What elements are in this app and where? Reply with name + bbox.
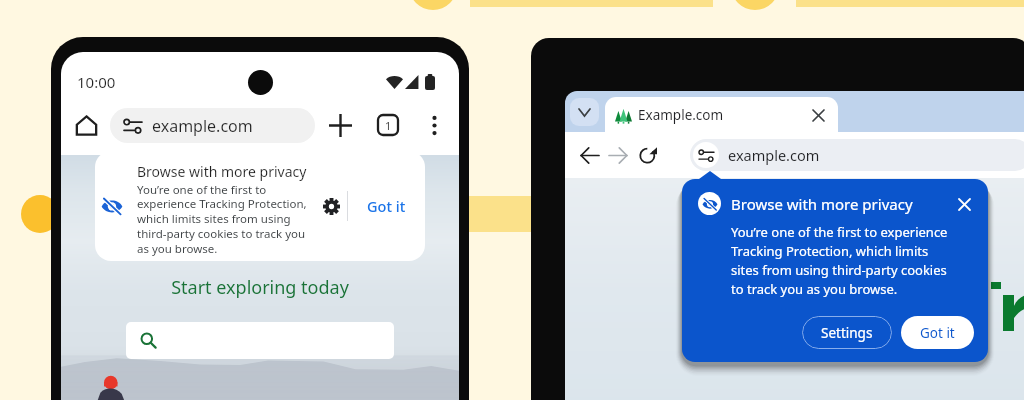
staticText: 10:00 <box>77 72 116 92</box>
staticText: example.com <box>152 115 253 137</box>
staticText: Example.com <box>638 106 724 124</box>
button[interactable]: Close tab <box>808 105 828 125</box>
staticText: Browse with more privacy <box>731 194 913 214</box>
staticText: example.com <box>728 145 820 165</box>
button[interactable]: Got it <box>357 188 416 224</box>
button[interactable]: Back <box>576 142 602 168</box>
staticText: Got it <box>920 324 955 342</box>
staticText: You’re one of the first to experience Tr… <box>137 182 320 257</box>
button[interactable]: Search <box>126 322 394 359</box>
staticText: Browse with more privacy <box>137 162 307 181</box>
button[interactable]: More options <box>420 111 448 139</box>
button[interactable]: Search tabs <box>570 98 599 126</box>
button[interactable]: New tab <box>323 108 357 142</box>
staticText: Start exploring today <box>61 275 459 300</box>
staticText: You’re one of the first to experience Tr… <box>731 223 955 298</box>
button[interactable]: Close <box>954 194 974 214</box>
staticText: Got it <box>367 196 406 216</box>
button[interactable]: Settings <box>317 192 345 220</box>
button[interactable]: Forward <box>605 142 631 168</box>
staticText: 1 <box>385 118 392 133</box>
button[interactable]: example.com <box>110 108 315 143</box>
button[interactable]: Settings <box>802 316 892 349</box>
button[interactable]: Example.com <box>605 97 838 132</box>
button[interactable]: example.com <box>690 139 1024 171</box>
button[interactable]: Got it <box>901 316 974 349</box>
button[interactable]: Home <box>70 109 102 141</box>
button[interactable]: Reload <box>634 142 660 168</box>
staticText: Settings <box>821 324 873 342</box>
button[interactable]: Tabs <box>371 108 405 142</box>
